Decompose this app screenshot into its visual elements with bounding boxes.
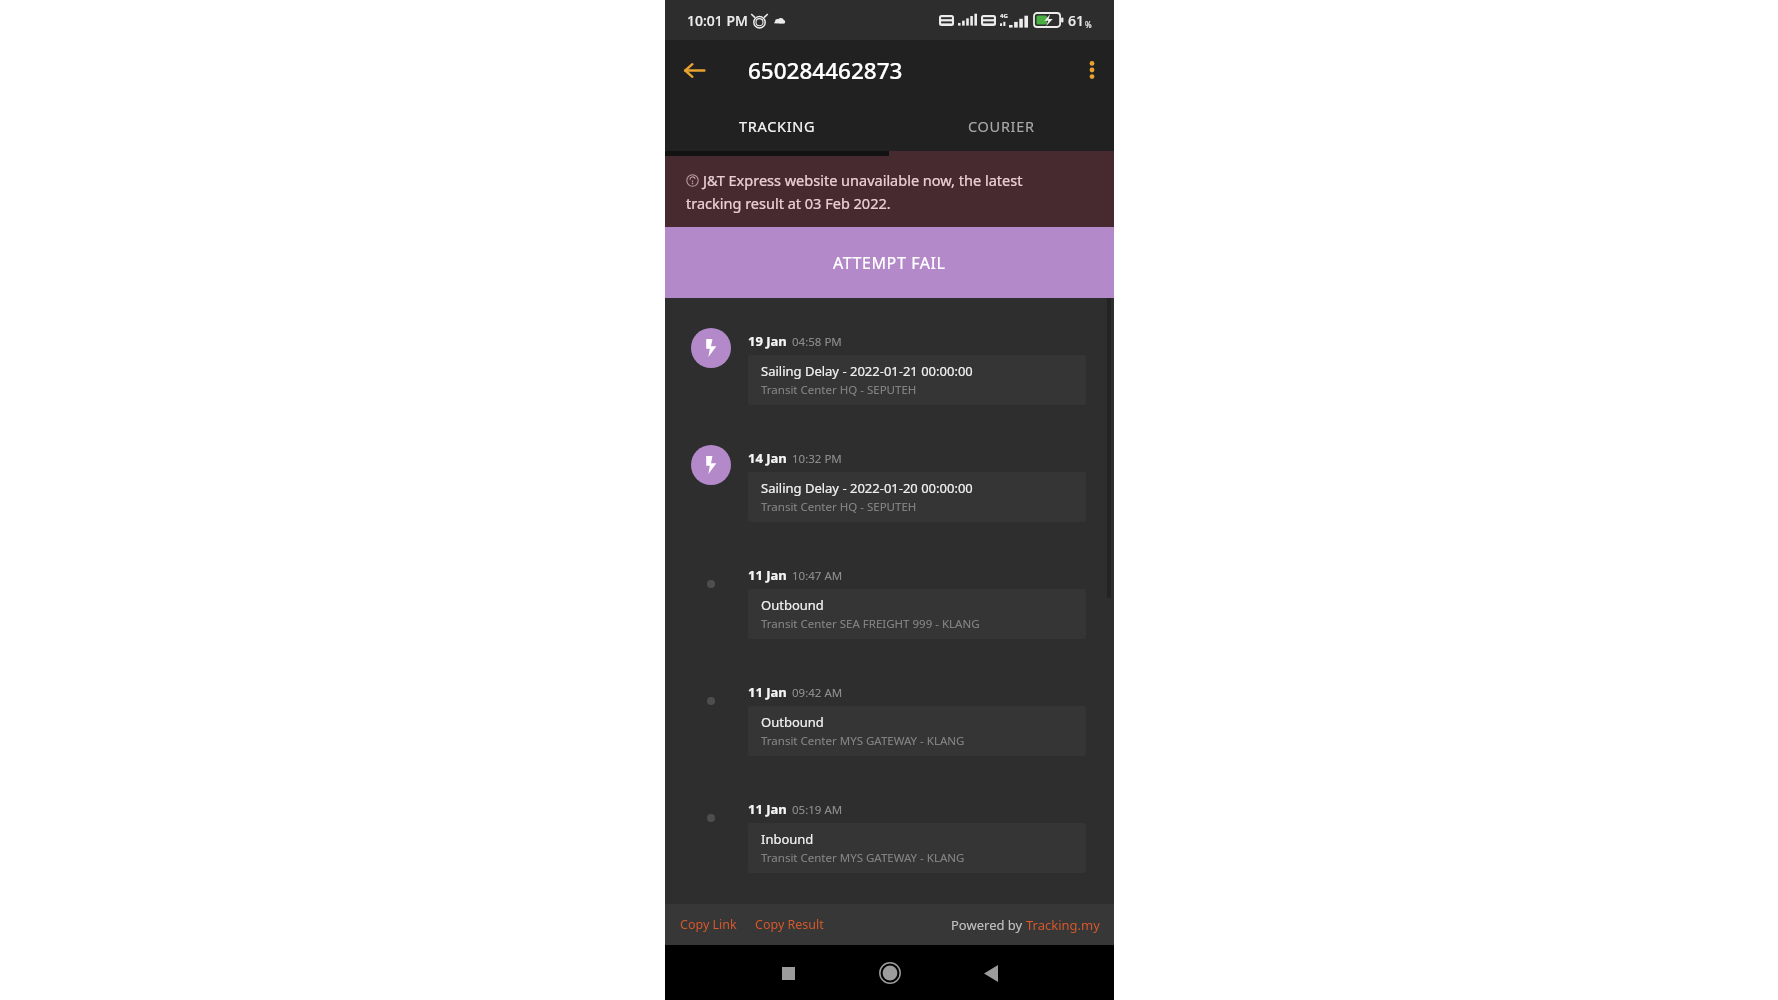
staticText: Inbound xyxy=(761,830,814,848)
staticText: Transit Center MYS GATEWAY - KLANG xyxy=(761,850,965,866)
button[interactable]: Recents xyxy=(765,950,811,996)
staticText: 10:47 AM xyxy=(792,568,843,584)
button[interactable]: Sailing Delay - 2022-01-20 00:00:00 xyxy=(748,472,1086,522)
staticText: 4G xyxy=(1000,12,1008,20)
button[interactable]: ATTEMPT FAIL xyxy=(665,227,1114,298)
staticText: COURIER xyxy=(968,116,1035,136)
staticText: TRACKING xyxy=(739,116,816,136)
staticText: ATTEMPT FAIL xyxy=(833,252,946,274)
staticText: 05:19 AM xyxy=(792,802,843,818)
button[interactable]: Home xyxy=(867,950,913,996)
staticText: % xyxy=(1085,19,1092,30)
staticText: 10:01 PM xyxy=(687,11,748,30)
staticText: Powered by xyxy=(951,916,1026,934)
button[interactable]: Back xyxy=(968,950,1014,996)
staticText: Outbound xyxy=(761,596,824,614)
staticText: 650284462873 xyxy=(748,55,903,86)
button[interactable]: Tracking.my xyxy=(1026,916,1100,934)
staticText: Sailing Delay - 2022-01-20 00:00:00 xyxy=(761,479,973,497)
button[interactable]: Back xyxy=(677,53,711,87)
button[interactable]: Copy Result xyxy=(755,916,824,933)
staticText: 14 Jan xyxy=(748,449,787,467)
staticText: 11 Jan xyxy=(748,800,787,818)
staticText: tracking result at 03 Feb 2022. xyxy=(686,193,891,213)
button[interactable]: More options xyxy=(1075,53,1109,87)
staticText: Transit Center MYS GATEWAY - KLANG xyxy=(761,733,965,749)
staticText: Sailing Delay - 2022-01-21 00:00:00 xyxy=(761,362,973,380)
staticText: 04:58 PM xyxy=(792,334,842,350)
staticText: 11 Jan xyxy=(748,566,787,584)
staticText: Transit Center HQ - SEPUTEH xyxy=(761,499,917,515)
staticText: 61 xyxy=(1068,11,1085,30)
staticText: Transit Center SEA FREIGHT 999 - KLANG xyxy=(761,616,980,632)
button[interactable]: COURIER xyxy=(889,100,1114,151)
button[interactable]: Outbound xyxy=(748,706,1086,756)
staticText: J&T Express website unavailable now, the… xyxy=(703,170,1023,190)
button[interactable]: Sailing Delay - 2022-01-21 00:00:00 xyxy=(748,355,1086,405)
staticText: Copy Result xyxy=(755,916,824,933)
staticText: 10:32 PM xyxy=(792,451,842,467)
button[interactable]: Inbound xyxy=(748,823,1086,873)
staticText: Transit Center HQ - SEPUTEH xyxy=(761,382,917,398)
staticText: Copy Link xyxy=(680,916,737,933)
button[interactable]: Outbound xyxy=(748,589,1086,639)
staticText: 09:42 AM xyxy=(792,685,843,701)
button[interactable]: Copy Link xyxy=(680,916,737,933)
staticText: 19 Jan xyxy=(748,332,787,350)
staticText: 11 Jan xyxy=(748,683,787,701)
staticText: Outbound xyxy=(761,713,824,731)
staticText: Tracking.my xyxy=(1026,916,1100,934)
button[interactable]: TRACKING xyxy=(665,100,889,151)
